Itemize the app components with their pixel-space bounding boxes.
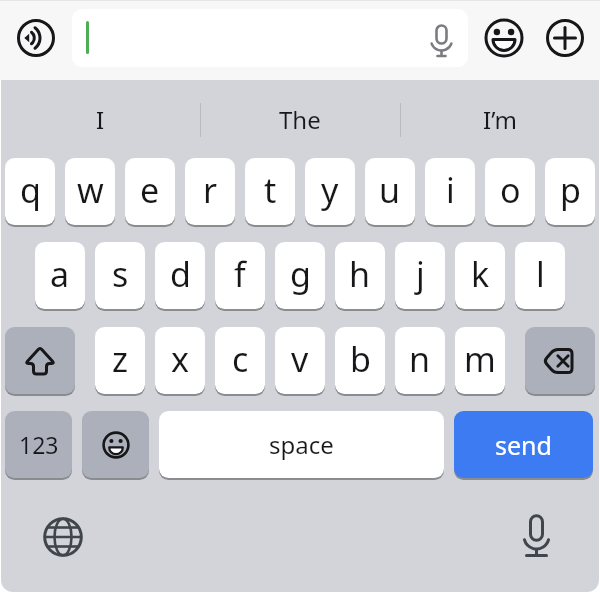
staticText: v xyxy=(291,336,309,382)
button[interactable] xyxy=(519,510,554,558)
button[interactable] xyxy=(484,18,524,58)
staticText: k xyxy=(471,251,490,297)
button[interactable] xyxy=(525,327,595,394)
staticText: I xyxy=(96,103,105,136)
button[interactable]: 123 xyxy=(5,411,72,478)
button[interactable]: q xyxy=(5,158,55,225)
button[interactable]: l xyxy=(515,242,565,309)
staticText: u xyxy=(379,167,401,213)
button[interactable]: n xyxy=(395,327,445,394)
button[interactable]: g xyxy=(275,242,325,309)
button[interactable]: i xyxy=(425,158,475,225)
button[interactable]: x xyxy=(155,327,205,394)
button[interactable]: s xyxy=(95,242,145,309)
staticText: y xyxy=(321,167,339,213)
staticText: c xyxy=(232,336,249,382)
staticText: space xyxy=(269,428,334,461)
staticText: l xyxy=(536,251,545,297)
staticText: p xyxy=(560,167,581,213)
button[interactable]: The xyxy=(200,98,400,140)
button[interactable]: I’m xyxy=(400,98,600,140)
staticText: g xyxy=(290,251,311,297)
button[interactable] xyxy=(42,516,84,558)
button[interactable]: h xyxy=(335,242,385,309)
button[interactable]: f xyxy=(215,242,265,309)
staticText: send xyxy=(495,428,552,462)
button[interactable]: a xyxy=(35,242,85,309)
staticText: r xyxy=(203,167,218,213)
button[interactable]: p xyxy=(545,158,595,225)
staticText: i xyxy=(446,167,455,213)
staticText: 123 xyxy=(19,429,59,460)
staticText: m xyxy=(464,336,496,382)
staticText: n xyxy=(409,336,431,382)
staticText: The xyxy=(279,103,321,136)
button[interactable] xyxy=(5,327,75,394)
staticText: t xyxy=(264,167,277,213)
staticText: s xyxy=(112,251,129,297)
button[interactable]: z xyxy=(95,327,145,394)
button[interactable]: w xyxy=(65,158,115,225)
button[interactable]: space xyxy=(159,411,444,478)
button[interactable]: r xyxy=(185,158,235,225)
staticText: a xyxy=(50,251,70,297)
button[interactable]: I xyxy=(0,98,200,140)
staticText: h xyxy=(349,251,371,297)
staticText: j xyxy=(416,251,425,297)
button[interactable]: t xyxy=(245,158,295,225)
staticText: f xyxy=(234,251,246,297)
staticText: x xyxy=(171,336,189,382)
button[interactable] xyxy=(72,9,468,67)
staticText: d xyxy=(170,251,191,297)
button[interactable]: b xyxy=(335,327,385,394)
button[interactable] xyxy=(429,14,455,60)
button[interactable] xyxy=(546,19,584,57)
staticText: w xyxy=(77,167,104,213)
button[interactable] xyxy=(16,18,56,58)
button[interactable]: d xyxy=(155,242,205,309)
button[interactable]: m xyxy=(455,327,505,394)
button[interactable]: j xyxy=(395,242,445,309)
button[interactable]: k xyxy=(455,242,505,309)
button[interactable]: u xyxy=(365,158,415,225)
button[interactable]: y xyxy=(305,158,355,225)
staticText: q xyxy=(20,167,41,213)
staticText: I’m xyxy=(483,103,518,136)
button[interactable]: c xyxy=(215,327,265,394)
button[interactable]: send xyxy=(454,411,593,478)
button[interactable]: o xyxy=(485,158,535,225)
button[interactable] xyxy=(82,411,149,478)
button[interactable]: e xyxy=(125,158,175,225)
staticText: e xyxy=(140,167,160,213)
staticText: b xyxy=(350,336,371,382)
staticText: z xyxy=(112,336,128,382)
button[interactable]: v xyxy=(275,327,325,394)
staticText: o xyxy=(500,167,521,213)
